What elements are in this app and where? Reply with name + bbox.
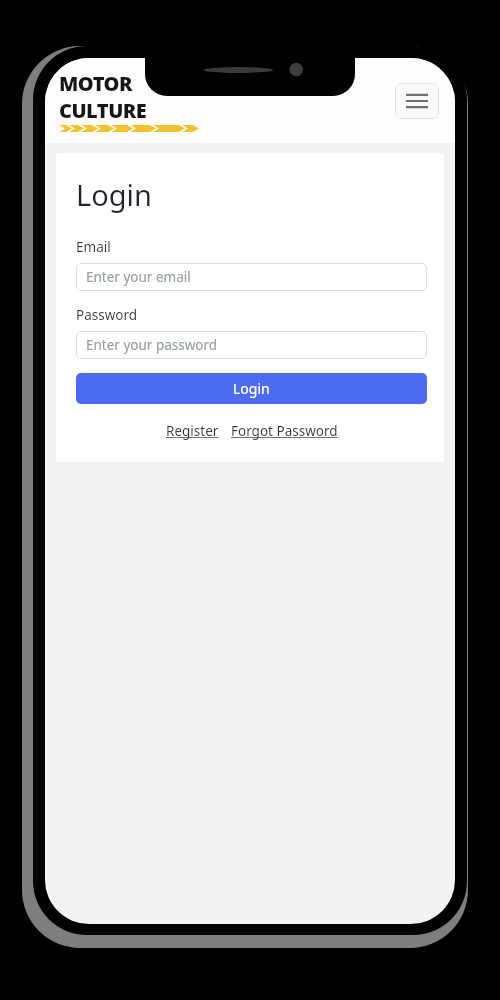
- button[interactable]: Open menu: [395, 83, 439, 119]
- staticText: Login: [76, 175, 152, 214]
- button[interactable]: Register: [166, 422, 219, 440]
- staticText: Password: [76, 306, 138, 324]
- staticText: Register: [166, 422, 219, 440]
- button[interactable]: Enter your password: [76, 331, 427, 359]
- staticText: Email: [76, 238, 111, 256]
- staticText: Enter your email: [86, 268, 191, 286]
- staticText: MOTOR CULTURE: [59, 70, 205, 124]
- staticText: Forgot Password: [231, 422, 338, 440]
- button[interactable]: Forgot Password: [231, 422, 338, 440]
- staticText: Login: [233, 379, 270, 398]
- button[interactable]: Enter your email: [76, 263, 427, 291]
- button[interactable]: Login: [76, 373, 427, 404]
- staticText: Enter your password: [86, 336, 218, 354]
